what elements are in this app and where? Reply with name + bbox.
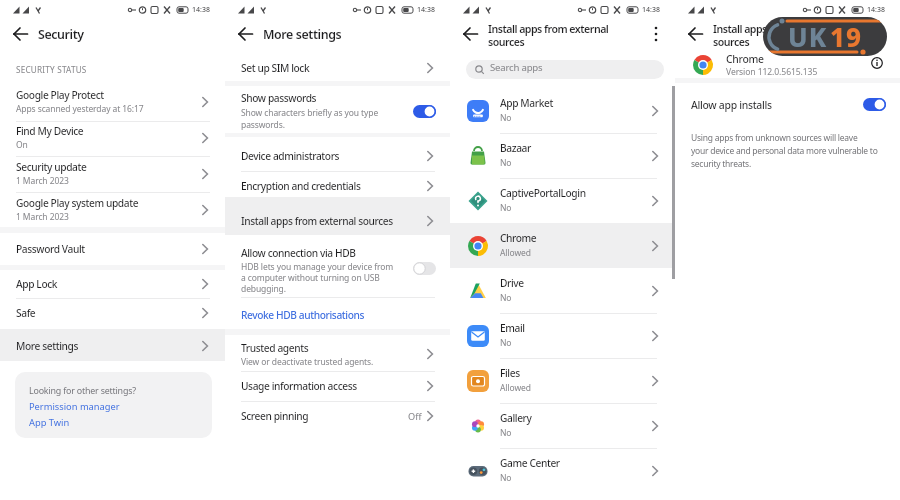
staticText: 19: [830, 19, 863, 54]
button[interactable]: [450, 133, 675, 178]
staticText: Drive: [500, 276, 524, 290]
button[interactable]: [450, 448, 675, 493]
button[interactable]: Search apps: [466, 60, 664, 79]
staticText: Usage information access: [241, 379, 357, 393]
button[interactable]: App Twin: [29, 414, 70, 431]
staticText: Allowed: [500, 382, 531, 394]
button[interactable]: [450, 268, 675, 313]
button[interactable]: [225, 53, 450, 81]
staticText: CaptivePortalLogin: [500, 186, 586, 200]
staticText: No: [500, 157, 512, 169]
button[interactable]: [225, 235, 450, 297]
button[interactable]: [450, 88, 675, 133]
staticText: No: [500, 112, 512, 124]
button[interactable]: [0, 193, 225, 227]
staticText: Gallery: [500, 411, 532, 425]
staticText: passwords.: [241, 119, 285, 131]
staticText: Off: [408, 410, 422, 423]
staticText: No: [500, 202, 512, 214]
staticText: 14:38: [867, 5, 885, 15]
staticText: Install apps from external: [713, 22, 834, 36]
staticText: Allow connection via HDB: [241, 246, 356, 260]
button[interactable]: [450, 223, 675, 268]
staticText: Chrome: [726, 52, 764, 66]
button[interactable]: [450, 313, 675, 358]
staticText: On: [16, 139, 28, 151]
staticText: Install apps from external: [488, 22, 609, 36]
staticText: UK: [788, 19, 828, 54]
button[interactable]: [0, 233, 225, 265]
button[interactable]: [450, 178, 675, 223]
button[interactable]: [0, 122, 225, 156]
staticText: Search apps: [490, 61, 543, 74]
staticText: Revoke HDB authorisations: [241, 308, 365, 322]
staticText: Allowed: [500, 247, 531, 259]
button[interactable]: [869, 55, 885, 71]
button[interactable]: [9, 23, 33, 45]
button[interactable]: [684, 23, 708, 45]
button[interactable]: [225, 298, 450, 329]
staticText: Game Center: [500, 456, 560, 470]
staticText: Show passwords: [241, 91, 317, 105]
staticText: Apps scanned yesterday at 16:17: [16, 103, 144, 115]
staticText: Find My Device: [16, 124, 84, 138]
staticText: Screen pinning: [241, 409, 309, 423]
staticText: Install apps from external sources: [241, 214, 393, 228]
staticText: Permission manager: [29, 400, 120, 413]
staticText: 14:38: [192, 5, 210, 15]
button[interactable]: [413, 105, 436, 118]
button[interactable]: Permission manager: [29, 398, 120, 415]
staticText: 1 March 2023: [16, 211, 69, 223]
button[interactable]: [225, 197, 450, 235]
staticText: sources: [713, 35, 750, 49]
staticText: More settings: [16, 339, 78, 353]
button[interactable]: [234, 23, 258, 45]
staticText: Security: [38, 26, 84, 43]
staticText: 14:38: [642, 5, 660, 15]
staticText: Show characters briefly as you type: [241, 107, 379, 119]
staticText: 14:38: [417, 5, 435, 15]
staticText: More settings: [263, 26, 342, 43]
button[interactable]: [413, 262, 436, 275]
staticText: Email: [500, 321, 525, 335]
button[interactable]: [225, 137, 450, 170]
button[interactable]: [0, 80, 225, 121]
button[interactable]: [450, 358, 675, 403]
staticText: Security update: [16, 160, 87, 174]
staticText: Google Play Protect: [16, 88, 104, 102]
staticText: your device and personal data more vulne…: [691, 145, 878, 157]
staticText: Looking for other settings?: [29, 384, 136, 396]
staticText: No: [500, 472, 512, 484]
button[interactable]: [675, 50, 900, 78]
staticText: Password Vault: [16, 242, 85, 256]
staticText: App Lock: [16, 277, 58, 291]
staticText: Trusted agents: [241, 341, 309, 355]
staticText: No: [500, 337, 512, 349]
staticText: Version 112.0.5615.135: [726, 66, 818, 78]
button[interactable]: [0, 299, 225, 328]
button[interactable]: [225, 402, 450, 431]
staticText: 1 March 2023: [16, 175, 69, 187]
button[interactable]: [225, 335, 450, 371]
staticText: Using apps from unknown sources will lea…: [691, 132, 858, 144]
staticText: security threats.: [691, 158, 751, 170]
button[interactable]: [225, 172, 450, 197]
button[interactable]: [0, 329, 225, 361]
button[interactable]: [863, 98, 886, 111]
staticText: App Twin: [29, 416, 70, 429]
button[interactable]: [0, 157, 225, 191]
button[interactable]: [459, 23, 483, 45]
button[interactable]: [648, 21, 664, 47]
button[interactable]: [675, 90, 900, 120]
staticText: Chrome: [500, 231, 537, 245]
button[interactable]: [450, 403, 675, 448]
staticText: Files: [500, 366, 520, 380]
button[interactable]: [225, 86, 450, 133]
staticText: sources: [488, 35, 525, 49]
button[interactable]: [225, 372, 450, 401]
staticText: Bazaar: [500, 141, 531, 155]
staticText: No: [500, 427, 512, 439]
button[interactable]: [0, 270, 225, 299]
staticText: App Market: [500, 96, 553, 110]
staticText: Safe: [16, 306, 36, 320]
